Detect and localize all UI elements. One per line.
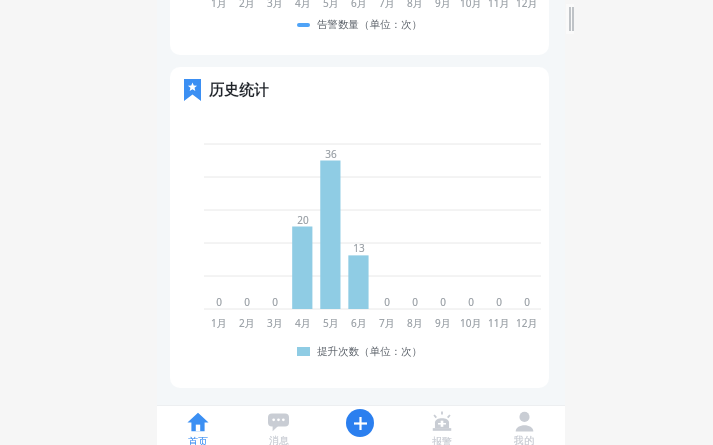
- staticText: 0: [244, 295, 250, 309]
- staticText: 4月: [295, 316, 311, 330]
- staticText: 0: [216, 295, 222, 309]
- staticText: 报警: [432, 435, 452, 445]
- staticText: 2月: [239, 0, 255, 10]
- staticText: 0: [468, 295, 474, 309]
- staticText: 历史统计: [209, 81, 269, 100]
- staticText: 10月: [460, 0, 482, 10]
- staticText: 9月: [435, 0, 451, 10]
- button[interactable]: 新增: [319, 405, 401, 445]
- staticText: 1月: [211, 0, 227, 10]
- staticText: 告警数量（单位：次）: [317, 18, 422, 31]
- staticText: 10月: [460, 316, 482, 330]
- staticText: 0: [412, 295, 418, 309]
- staticText: 提升次数（单位：次）: [317, 345, 422, 358]
- button[interactable]: 首页: [157, 405, 238, 445]
- staticText: 8月: [407, 0, 423, 10]
- staticText: 0: [524, 295, 530, 309]
- staticText: 36: [325, 147, 337, 161]
- button[interactable]: 消息: [238, 405, 319, 445]
- staticText: 11月: [488, 316, 510, 330]
- staticText: 0: [496, 295, 502, 309]
- staticText: 7月: [379, 316, 395, 330]
- staticText: 1月: [211, 316, 227, 330]
- staticText: 13: [353, 241, 365, 255]
- staticText: 7月: [379, 0, 395, 10]
- button[interactable]: 我的: [483, 405, 565, 445]
- staticText: 12月: [516, 316, 538, 330]
- staticText: 我的: [514, 434, 534, 445]
- staticText: 5月: [323, 316, 339, 330]
- staticText: 11月: [488, 0, 510, 10]
- staticText: 6月: [351, 0, 367, 10]
- staticText: 8月: [407, 316, 423, 330]
- staticText: 4月: [295, 0, 311, 10]
- staticText: 0: [272, 295, 278, 309]
- staticText: 2月: [239, 316, 255, 330]
- staticText: 6月: [351, 316, 367, 330]
- staticText: 20: [297, 213, 309, 227]
- staticText: 3月: [267, 0, 283, 10]
- staticText: 消息: [269, 434, 289, 445]
- staticText: 12月: [516, 0, 538, 10]
- staticText: 9月: [435, 316, 451, 330]
- staticText: 0: [440, 295, 446, 309]
- staticText: 首页: [188, 435, 208, 445]
- staticText: 5月: [323, 0, 339, 10]
- staticText: 0: [384, 295, 390, 309]
- staticText: 3月: [267, 316, 283, 330]
- button[interactable]: 报警: [401, 405, 483, 445]
